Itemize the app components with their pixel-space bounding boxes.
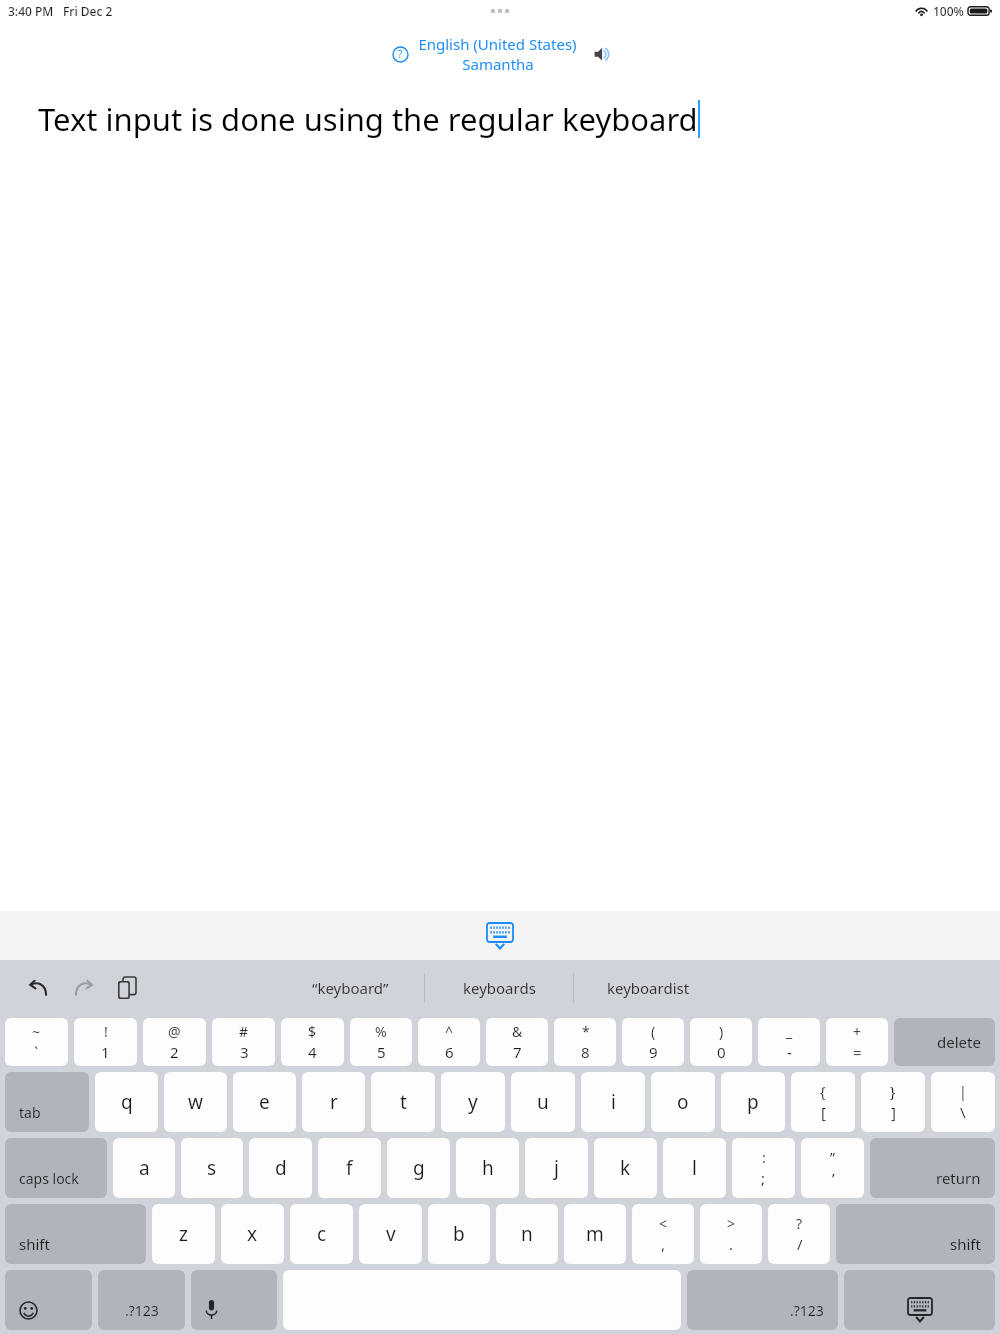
staticText: ? bbox=[398, 47, 403, 61]
button[interactable]: u bbox=[511, 1072, 575, 1132]
button[interactable]: % bbox=[350, 1018, 412, 1066]
staticText: h bbox=[482, 1155, 494, 1181]
button[interactable]: v bbox=[359, 1204, 422, 1264]
button[interactable]: shift bbox=[836, 1204, 995, 1264]
button[interactable]: ^ bbox=[418, 1018, 480, 1066]
button[interactable]: w bbox=[164, 1072, 227, 1132]
staticText: = bbox=[853, 1042, 862, 1062]
button[interactable]: e bbox=[233, 1072, 296, 1132]
button[interactable]: delete bbox=[894, 1018, 995, 1066]
button[interactable]: shift bbox=[5, 1204, 146, 1264]
button[interactable]: f bbox=[318, 1138, 381, 1198]
staticText: 4 bbox=[308, 1042, 317, 1062]
button[interactable]: < bbox=[632, 1204, 694, 1264]
button[interactable]: p bbox=[721, 1072, 785, 1132]
button[interactable]: i bbox=[581, 1072, 645, 1132]
button[interactable]: g bbox=[387, 1138, 450, 1198]
staticText: ? bbox=[796, 1214, 803, 1233]
staticText: ~ bbox=[32, 1022, 41, 1041]
button[interactable]: Redo bbox=[66, 971, 100, 1005]
button[interactable]: y bbox=[441, 1072, 505, 1132]
button[interactable]: q bbox=[95, 1072, 158, 1132]
button[interactable]: return bbox=[870, 1138, 995, 1198]
button[interactable]: Hide keyboard bbox=[480, 916, 520, 956]
button[interactable]: l bbox=[663, 1138, 726, 1198]
staticText: 2 bbox=[170, 1042, 179, 1062]
button[interactable]: k bbox=[594, 1138, 657, 1198]
staticText: ” bbox=[830, 1148, 836, 1167]
staticText: ] bbox=[891, 1102, 896, 1122]
staticText: delete bbox=[937, 1032, 981, 1052]
button[interactable]: .?123 bbox=[98, 1270, 185, 1330]
staticText: e bbox=[259, 1089, 270, 1115]
staticText: 3:40 PM bbox=[8, 3, 54, 19]
button[interactable]: a bbox=[113, 1138, 175, 1198]
button[interactable]: ~ bbox=[5, 1018, 68, 1066]
staticText: 0 bbox=[717, 1042, 726, 1062]
staticText: s bbox=[207, 1155, 217, 1181]
button[interactable]: ) bbox=[690, 1018, 752, 1066]
button[interactable]: .?123 bbox=[687, 1270, 838, 1330]
button[interactable]: > bbox=[700, 1204, 762, 1264]
button[interactable]: keyboardist bbox=[574, 960, 722, 1016]
button[interactable]: : bbox=[732, 1138, 795, 1198]
button[interactable]: m bbox=[564, 1204, 626, 1264]
button[interactable]: ( bbox=[622, 1018, 684, 1066]
button[interactable]: _ bbox=[758, 1018, 820, 1066]
button[interactable]: @ bbox=[143, 1018, 206, 1066]
staticText: @ bbox=[168, 1022, 181, 1041]
button[interactable]: b bbox=[428, 1204, 490, 1264]
button[interactable]: n bbox=[496, 1204, 558, 1264]
button[interactable]: # bbox=[212, 1018, 275, 1066]
button[interactable]: Paste bbox=[110, 971, 144, 1005]
staticText: f bbox=[346, 1155, 353, 1181]
staticText: 7 bbox=[513, 1042, 522, 1062]
staticText: shift bbox=[19, 1234, 50, 1254]
button[interactable]: ? bbox=[768, 1204, 830, 1264]
button[interactable]: Dictate bbox=[191, 1270, 277, 1330]
button[interactable]: $ bbox=[281, 1018, 344, 1066]
button[interactable]: caps lock bbox=[5, 1138, 107, 1198]
staticText: l bbox=[692, 1155, 697, 1181]
button[interactable]: s bbox=[181, 1138, 243, 1198]
button[interactable]: | bbox=[931, 1072, 995, 1132]
button[interactable]: ” bbox=[801, 1138, 864, 1198]
button[interactable]: “keyboard” bbox=[276, 960, 424, 1016]
button[interactable]: o bbox=[651, 1072, 715, 1132]
button[interactable]: English (United States) bbox=[418, 34, 577, 74]
staticText: ^ bbox=[445, 1022, 454, 1041]
button[interactable]: t bbox=[371, 1072, 435, 1132]
staticText: 6 bbox=[445, 1042, 454, 1062]
staticText: .?123 bbox=[125, 1301, 159, 1320]
staticText: j bbox=[554, 1155, 559, 1181]
button[interactable]: Undo bbox=[22, 971, 56, 1005]
staticText: r bbox=[330, 1089, 338, 1115]
button[interactable]: Speak bbox=[585, 40, 613, 68]
staticText: z bbox=[179, 1221, 188, 1247]
button[interactable]: r bbox=[302, 1072, 365, 1132]
button[interactable]: c bbox=[290, 1204, 353, 1264]
staticText: 9 bbox=[649, 1042, 658, 1062]
button[interactable]: x bbox=[221, 1204, 284, 1264]
button[interactable]: { bbox=[791, 1072, 855, 1132]
button[interactable]: Emoji bbox=[5, 1270, 92, 1330]
button[interactable]: h bbox=[456, 1138, 519, 1198]
button[interactable]: Dismiss keyboard bbox=[844, 1270, 995, 1330]
button[interactable]: ! bbox=[74, 1018, 137, 1066]
button[interactable]: + bbox=[826, 1018, 888, 1066]
button[interactable]: } bbox=[861, 1072, 925, 1132]
button[interactable]: z bbox=[152, 1204, 215, 1264]
button[interactable]: & bbox=[486, 1018, 548, 1066]
button[interactable]: j bbox=[525, 1138, 588, 1198]
staticText: q bbox=[121, 1089, 133, 1115]
button[interactable]: * bbox=[554, 1018, 616, 1066]
staticText: y bbox=[468, 1089, 478, 1115]
button[interactable]: Help bbox=[388, 42, 412, 66]
staticText: n bbox=[521, 1221, 533, 1247]
button[interactable]: keyboards bbox=[425, 960, 573, 1016]
button[interactable]: d bbox=[249, 1138, 312, 1198]
staticText: return bbox=[936, 1168, 981, 1188]
staticText: ) bbox=[719, 1022, 724, 1041]
button[interactable]: tab bbox=[5, 1072, 89, 1132]
